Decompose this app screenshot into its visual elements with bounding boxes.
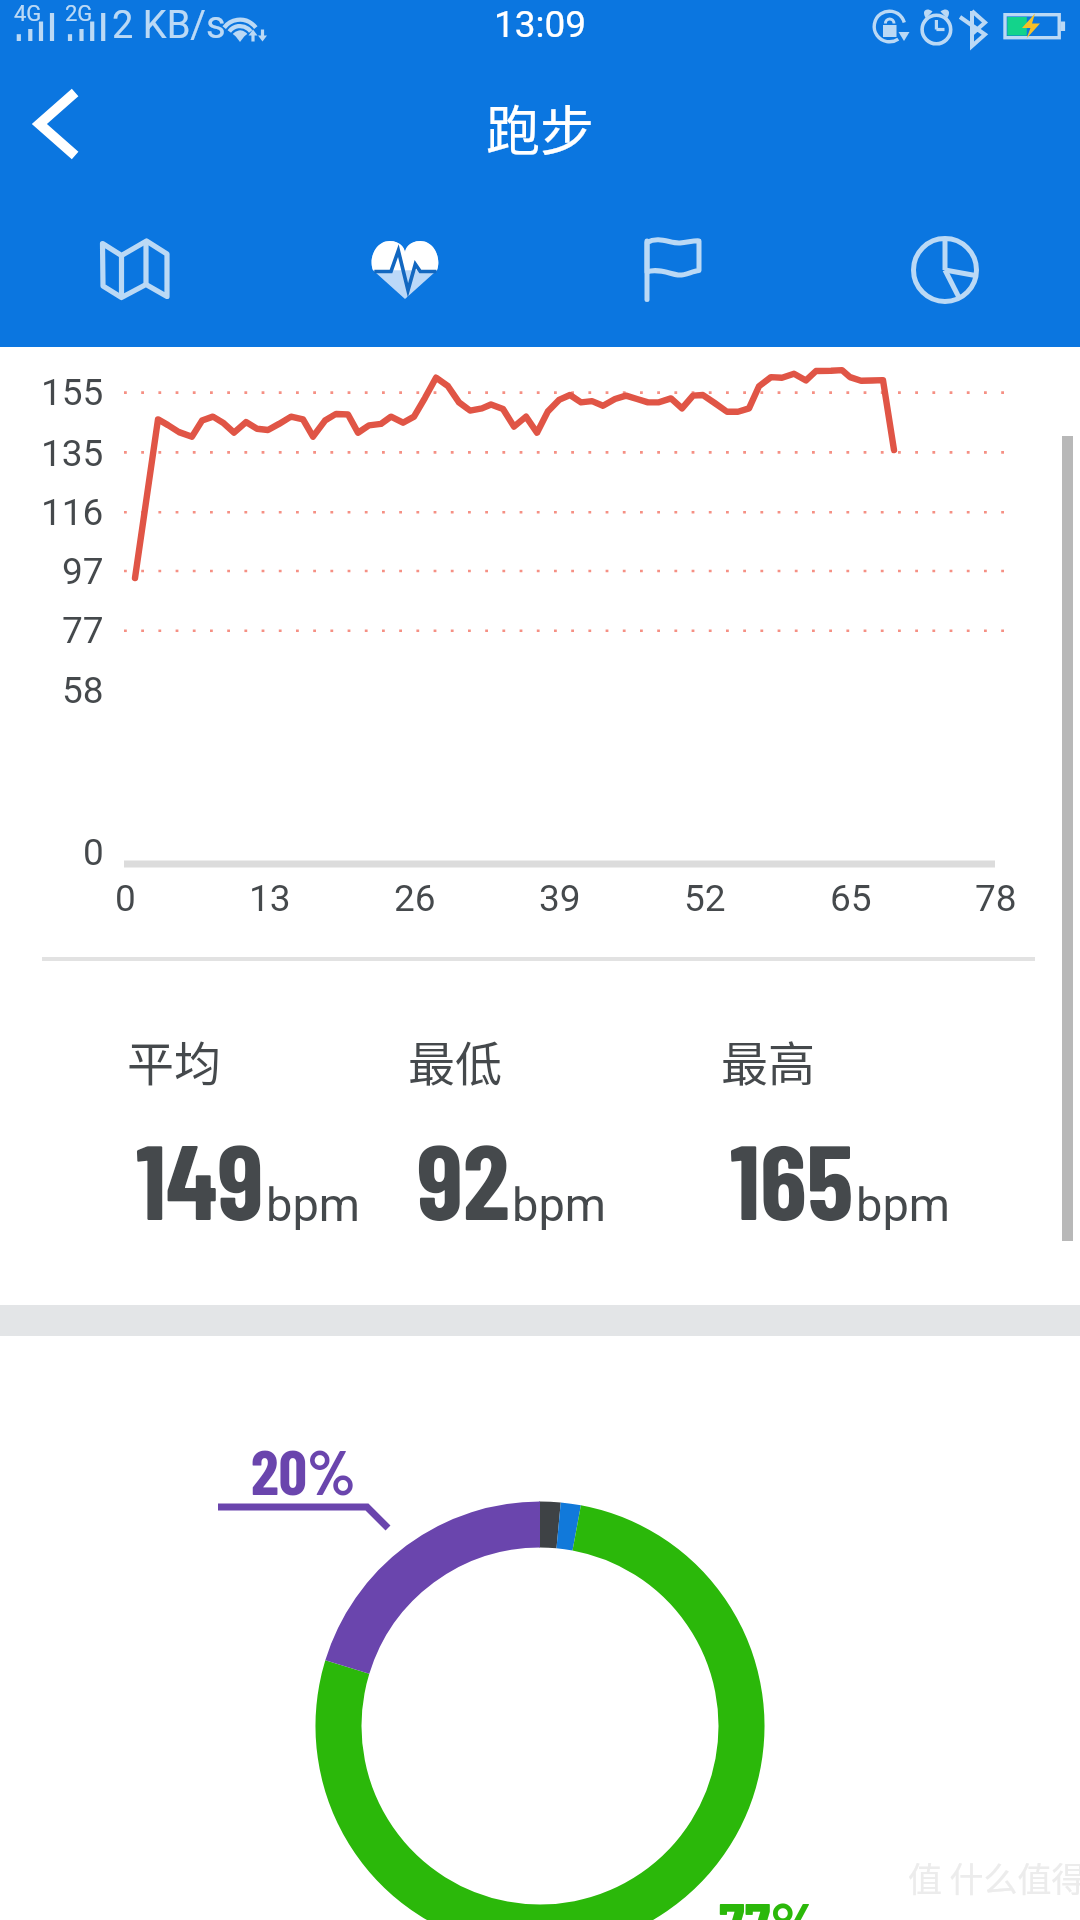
- staticText: 最高: [721, 1026, 815, 1094]
- staticText: 65: [830, 877, 872, 920]
- button[interactable]: Back: [6, 74, 106, 174]
- staticText: 52: [684, 877, 726, 920]
- staticText: 92: [417, 1114, 510, 1241]
- staticText: 平均: [127, 1026, 221, 1094]
- staticText: 值 什么值得买: [908, 1853, 1080, 1902]
- button[interactable]: Map: [35, 208, 235, 332]
- staticText: 116: [41, 491, 104, 534]
- staticText: 58: [62, 669, 104, 712]
- staticText: bpm: [856, 1177, 950, 1232]
- button[interactable]: Stats: [845, 208, 1045, 332]
- staticText: 135: [41, 432, 104, 475]
- button[interactable]: Flag: [575, 208, 775, 332]
- staticText: 77: [62, 609, 104, 652]
- staticText: 2G: [65, 1, 93, 27]
- staticText: 39: [539, 877, 581, 920]
- staticText: 最低: [408, 1026, 502, 1094]
- staticText: bpm: [266, 1177, 360, 1232]
- staticText: 77%: [719, 1885, 819, 1920]
- staticText: 0: [83, 831, 104, 874]
- staticText: 155: [41, 371, 104, 414]
- button[interactable]: Heart rate: [305, 208, 505, 332]
- staticText: 20%: [251, 1432, 356, 1508]
- staticText: 2 KB/s: [112, 3, 226, 48]
- staticText: 78: [975, 877, 1017, 920]
- staticText: 跑步: [486, 88, 594, 166]
- staticText: 149: [136, 1114, 264, 1241]
- staticText: 26: [394, 877, 436, 920]
- staticText: 13: [249, 877, 291, 920]
- staticText: bpm: [512, 1177, 606, 1232]
- staticText: 97: [62, 550, 104, 593]
- staticText: 4G: [14, 1, 42, 27]
- staticText: 0: [115, 877, 136, 920]
- staticText: 165: [730, 1114, 854, 1241]
- staticText: 13:09: [494, 3, 587, 46]
